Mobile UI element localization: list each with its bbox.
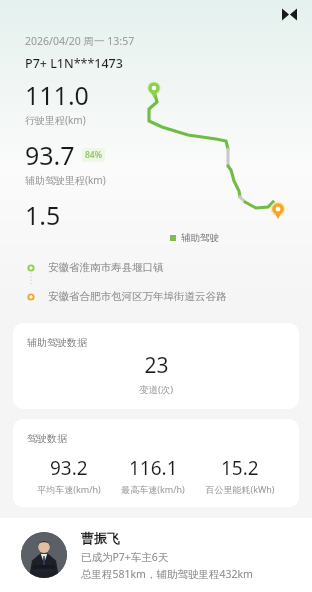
staticText: 总里程581km，辅助驾驶里程432km <box>81 567 253 581</box>
staticText: 111.0 <box>25 78 89 112</box>
staticText: 百公里能耗(kWh) <box>205 483 275 495</box>
staticText: 2026/04/20 周一 13:57 <box>25 34 135 48</box>
staticText: 93.2 <box>50 455 88 481</box>
staticText: 平均车速(km/h) <box>37 483 101 495</box>
staticText: 行驶里程(km) <box>25 113 86 127</box>
staticText: 辅助驾驶数据 <box>27 336 87 349</box>
staticText: 最高车速(km/h) <box>121 483 185 495</box>
button[interactable]: 曹振飞 <box>0 518 312 592</box>
staticText: 116.1 <box>129 455 178 481</box>
staticText: 23 <box>144 351 169 380</box>
staticText: 安徽省合肥市包河区万年埠街道云谷路 <box>48 290 227 303</box>
staticText: 驾驶数据 <box>27 432 67 445</box>
staticText: 1.5 <box>25 198 61 232</box>
staticText: 变道(次) <box>139 383 174 396</box>
staticText: 84% <box>85 149 102 161</box>
staticText: 93.7 <box>25 138 75 172</box>
staticText: 辅助驾驶里程(km) <box>25 173 106 187</box>
staticText: 15.2 <box>221 455 259 481</box>
button[interactable]: 辅助驾驶数据 <box>13 323 299 409</box>
staticText: 曹振飞 <box>81 530 120 546</box>
staticText: 已成为P7+车主6天 <box>81 550 169 564</box>
staticText: 辅助驾驶 <box>181 232 219 244</box>
staticText: 安徽省淮南市寿县堰口镇 <box>48 261 164 274</box>
button[interactable]: Collapse <box>276 1 302 27</box>
button[interactable]: 驾驶数据 <box>13 419 299 507</box>
staticText: P7+ L1N***1473 <box>25 55 123 72</box>
